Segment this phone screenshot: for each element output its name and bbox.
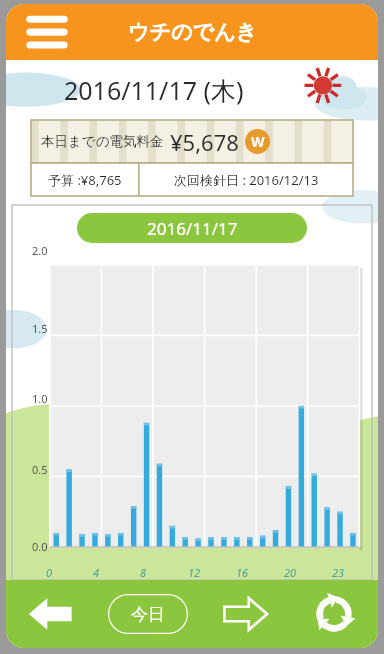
- button[interactable]: Refresh: [290, 580, 378, 648]
- button[interactable]: Next day: [202, 580, 290, 648]
- staticText: 今日: [131, 604, 165, 625]
- button[interactable]: 2016/11/17: [77, 213, 307, 243]
- staticText: 本日までの電気料金: [41, 133, 164, 150]
- button[interactable]: 今日: [108, 594, 188, 634]
- staticText: 0.5: [32, 462, 48, 477]
- staticText: 予算 :¥8,765: [48, 171, 122, 189]
- staticText: 1.5: [32, 321, 48, 336]
- button[interactable]: 本日までの電気料金: [31, 120, 353, 196]
- staticText: 次回検針日 : 2016/12/13: [174, 171, 319, 189]
- button[interactable]: Menu: [24, 9, 70, 55]
- staticText: ¥5,678: [170, 127, 239, 157]
- staticText: 2016/11/17: [147, 217, 238, 240]
- staticText: 20: [284, 565, 297, 580]
- staticText: W: [251, 132, 265, 151]
- button[interactable]: Previous day: [6, 580, 93, 648]
- staticText: 0.0: [32, 539, 48, 554]
- staticText: 0: [46, 565, 53, 580]
- staticText: ウチのでんき: [128, 19, 257, 45]
- staticText: 2.0: [32, 243, 48, 258]
- staticText: 16: [236, 565, 249, 580]
- staticText: 12: [188, 565, 201, 580]
- staticText: 8: [140, 565, 147, 580]
- staticText: 2016/11/17 (木): [64, 73, 244, 107]
- staticText: 4: [93, 565, 100, 580]
- staticText: 1.0: [32, 391, 48, 406]
- staticText: 23: [332, 565, 345, 580]
